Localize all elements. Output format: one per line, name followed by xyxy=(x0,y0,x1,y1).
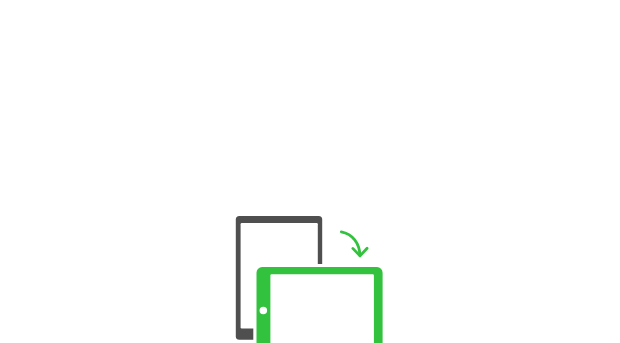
button[interactable]: Transfer apps and data to your new phone xyxy=(0,0,620,343)
